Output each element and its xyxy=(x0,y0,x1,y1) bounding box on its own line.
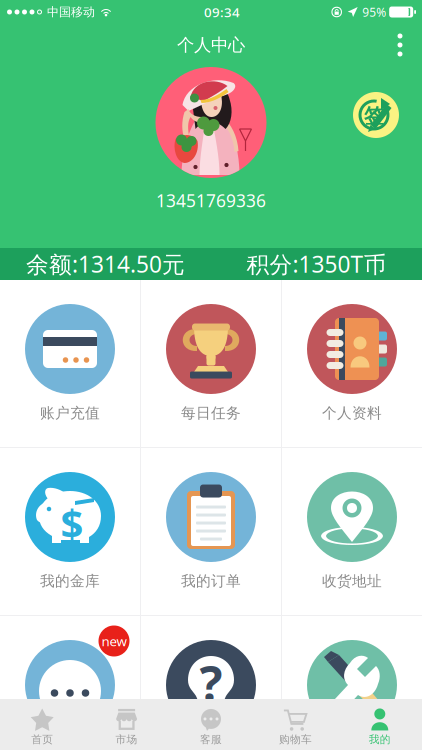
staticText: 我的订单 xyxy=(181,572,241,590)
staticText: 积分:1350T币 xyxy=(246,249,386,279)
button[interactable]: $ xyxy=(0,448,140,615)
button[interactable]: 账户充值 xyxy=(0,280,140,447)
staticText: 每日任务 xyxy=(181,404,241,422)
button[interactable]: 积分:1350T币 xyxy=(211,248,422,280)
staticText: 余额:1314.50元 xyxy=(26,249,185,279)
staticText: new xyxy=(101,632,126,650)
staticText: 95% xyxy=(362,4,386,20)
staticText: 个人中心 xyxy=(177,34,245,56)
button[interactable]: new xyxy=(0,616,140,750)
button[interactable]: 我的订单 xyxy=(141,448,281,615)
button[interactable]: 我的 xyxy=(338,699,422,750)
staticText: 账户充值 xyxy=(40,404,100,422)
staticText: 系统设置 xyxy=(322,740,382,750)
staticText: 在线客服 xyxy=(40,740,100,750)
button[interactable]: 购物车 xyxy=(253,699,338,750)
button[interactable]: 个人资料 xyxy=(282,280,422,447)
staticText: 09:34 xyxy=(204,3,240,21)
staticText: 13451769336 xyxy=(156,189,266,212)
button[interactable]: Daily sign in xyxy=(353,92,399,138)
staticText: 市场 xyxy=(116,733,138,746)
button[interactable]: 客服 xyxy=(169,699,253,750)
staticText: 签 xyxy=(364,104,384,128)
staticText: 常见问题 xyxy=(181,740,241,750)
staticText: 收货地址 xyxy=(322,572,382,590)
staticText: 首页 xyxy=(31,733,53,746)
button[interactable]: ? xyxy=(141,616,281,750)
button[interactable]: 余额:1314.50元 xyxy=(0,248,211,280)
button[interactable]: 首页 xyxy=(0,699,84,750)
staticText: 我的金库 xyxy=(40,572,100,590)
button[interactable]: 每日任务 xyxy=(141,280,281,447)
button[interactable]: 市场 xyxy=(84,699,169,750)
staticText: 我的 xyxy=(369,733,391,746)
staticText: 购物车 xyxy=(279,733,312,746)
staticText: 客服 xyxy=(200,733,222,746)
staticText: 中国移动 xyxy=(47,5,95,19)
staticText: ? xyxy=(199,651,222,715)
button[interactable]: 系统设置 xyxy=(282,616,422,750)
button[interactable]: More options xyxy=(378,24,422,66)
staticText: 个人资料 xyxy=(322,404,382,422)
button[interactable]: 收货地址 xyxy=(282,448,422,615)
staticText: $ xyxy=(60,496,83,549)
